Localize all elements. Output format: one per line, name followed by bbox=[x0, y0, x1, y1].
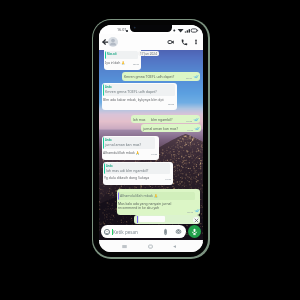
button[interactable]: jurnal aman kan mas? bbox=[141, 124, 201, 132]
button[interactable]: Mas.sdi bbox=[104, 46, 141, 70]
staticText: 08:09 bbox=[168, 102, 175, 105]
button[interactable]: Emoji bbox=[101, 225, 186, 238]
other: Attach bbox=[164, 229, 167, 235]
button[interactable]: Call bbox=[180, 38, 188, 46]
staticText: Alhamdulillah mbak 🙏 bbox=[103, 150, 140, 155]
button[interactable]: lah mas bbox=[131, 115, 200, 123]
button[interactable]: Close bbox=[193, 217, 199, 223]
staticText: 10:20 bbox=[187, 128, 194, 131]
staticText: 13:36 bbox=[151, 152, 158, 155]
button[interactable]: Back bbox=[170, 242, 179, 251]
button[interactable]: Video call bbox=[167, 38, 175, 46]
button[interactable]: Close bbox=[134, 215, 200, 224]
staticText: 10:20 bbox=[186, 119, 193, 122]
button[interactable]: Home bbox=[146, 242, 155, 251]
button[interactable]: Back bbox=[102, 38, 110, 46]
staticText: blm ngambil? bbox=[151, 117, 173, 122]
staticText: jurnal aman kan mas? bbox=[105, 142, 142, 147]
staticText: lah mas udi blm ngambil? bbox=[106, 168, 149, 173]
other: Emoji bbox=[104, 229, 110, 235]
staticText: Anda bbox=[105, 85, 112, 89]
staticText: 18:10 bbox=[187, 210, 194, 213]
staticText: lah mas bbox=[133, 117, 146, 122]
button[interactable]: Anda bbox=[103, 162, 173, 185]
button[interactable]: Kmren gmna TOEFL udh dapet? bbox=[122, 72, 200, 81]
staticText: 03:37 bbox=[186, 76, 193, 79]
button[interactable]: Anda bbox=[102, 136, 159, 160]
button[interactable]: Recent apps bbox=[120, 242, 129, 251]
staticText: 16.01 bbox=[117, 27, 127, 32]
other: Camera bbox=[176, 229, 181, 234]
staticText: Alhamdulillah mbak 🙏 bbox=[120, 193, 159, 198]
staticText: Anda bbox=[106, 164, 113, 168]
button[interactable]: Anda bbox=[102, 83, 177, 110]
staticText: Kmren gmna TOEFL udh dapet? bbox=[105, 89, 157, 94]
staticText: Mas kalo ada yang nanyain jurnal recomme… bbox=[118, 201, 172, 210]
staticText: Kmren gmna TOEFL udh dapet? bbox=[124, 74, 175, 79]
staticText: Yg dulu dikasih dang Sukaya bbox=[104, 175, 150, 180]
staticText: Mas.sdi bbox=[107, 52, 117, 56]
staticText: Blm ada kabar mbak, kykynya blm dpt bbox=[103, 97, 164, 102]
button[interactable]: Voice message bbox=[188, 225, 201, 238]
staticText: Iya in'dah 🙏 bbox=[105, 60, 126, 65]
staticText: jurnal aman kan mas? bbox=[143, 126, 178, 131]
staticText: 08:47 bbox=[133, 62, 140, 65]
button[interactable]: More options bbox=[192, 38, 200, 46]
staticText: 13:37 bbox=[165, 177, 172, 180]
staticText: Ketik pesan bbox=[113, 229, 138, 235]
staticText: Anda bbox=[105, 138, 112, 142]
staticText: 17 Jun 2024 bbox=[140, 52, 157, 56]
button[interactable]: Contact profile bbox=[108, 37, 118, 47]
button[interactable]: Alhamdulillah mbak 🙏 bbox=[117, 189, 200, 215]
